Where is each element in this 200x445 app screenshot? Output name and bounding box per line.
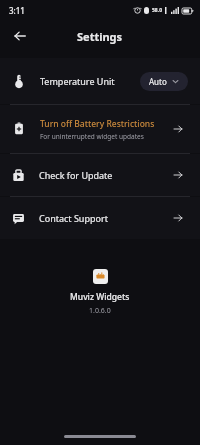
button[interactable]: Turn off Battery Restrictions bbox=[0, 105, 200, 153]
staticText: For uninterrupted widget updates bbox=[40, 132, 144, 141]
staticText: 1.0.6.0 bbox=[89, 306, 111, 316]
button[interactable]: Contact Support bbox=[0, 197, 200, 239]
staticText: Contact Support bbox=[39, 212, 108, 224]
button[interactable]: Back bbox=[6, 22, 34, 50]
staticText: 58.0 bbox=[152, 7, 162, 14]
button[interactable]: Auto bbox=[140, 72, 188, 91]
staticText: Temperature Unit bbox=[40, 75, 115, 87]
button[interactable]: Open bbox=[168, 208, 188, 228]
staticText: Auto bbox=[149, 76, 167, 87]
button[interactable]: Open bbox=[168, 165, 188, 185]
button[interactable]: Temperature Unit bbox=[0, 58, 200, 104]
staticText: 3:11 bbox=[9, 5, 25, 16]
button[interactable]: Check for Update bbox=[0, 154, 200, 196]
staticText: Check for Update bbox=[39, 169, 113, 181]
staticText: Settings bbox=[77, 29, 123, 44]
staticText: Muviz Widgets bbox=[70, 291, 130, 303]
button[interactable]: Open bbox=[168, 119, 188, 139]
staticText: Turn off Battery Restrictions bbox=[40, 118, 155, 130]
